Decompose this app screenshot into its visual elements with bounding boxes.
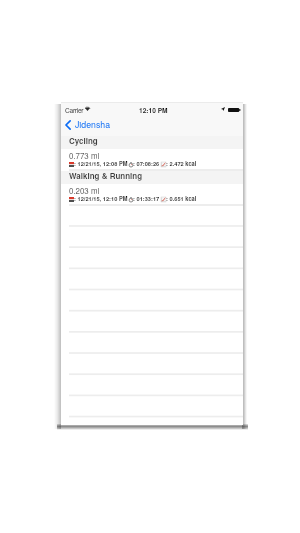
button[interactable]: 0.203 mi bbox=[61, 184, 243, 206]
staticText: Carrier bbox=[65, 105, 84, 115]
staticText: : 07:08:26 bbox=[133, 160, 160, 168]
staticText: Walking & Running bbox=[69, 170, 143, 181]
staticText: Jidensha bbox=[75, 118, 111, 131]
staticText: 12:10 PM bbox=[139, 106, 168, 115]
button[interactable] bbox=[63, 119, 113, 133]
staticText: : 12/21/15, 12:10 PM bbox=[74, 195, 128, 203]
staticText: : 2.472 kcal bbox=[166, 160, 197, 168]
staticText: Cycling bbox=[69, 135, 98, 146]
button[interactable]: 0.773 mi bbox=[61, 149, 243, 171]
staticText: 0.203 mi bbox=[69, 185, 100, 196]
staticText: 0.773 mi bbox=[69, 150, 100, 161]
staticText: : 01:33:17 bbox=[133, 195, 160, 203]
staticText: : 0.651 kcal bbox=[166, 195, 197, 203]
staticText: : 12/21/15, 12:08 PM bbox=[74, 160, 128, 168]
